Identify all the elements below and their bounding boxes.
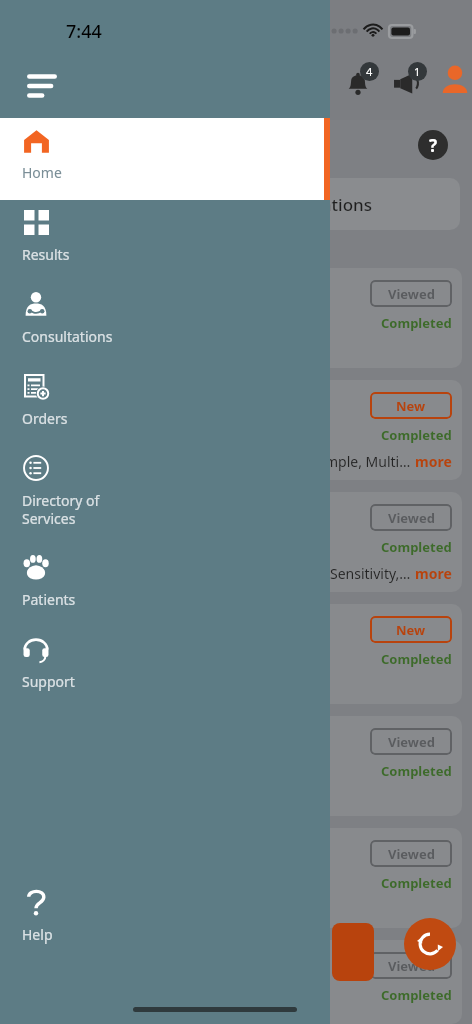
staticText: Orders [22,409,68,428]
staticText: ? [429,134,438,157]
staticText: Consultations [22,327,113,346]
button[interactable]: Viewed [250,828,462,928]
staticText: Viewed [388,285,435,303]
button[interactable]: New [250,380,462,480]
staticText: Home [22,163,62,182]
staticText: Sensitivity,… [330,564,411,583]
staticText: Viewed [388,733,435,751]
button[interactable]: Support [0,627,330,709]
staticText: Support [22,672,75,691]
staticText: more [415,564,452,583]
button[interactable]: Viewed [250,940,462,1024]
button[interactable]: Help [0,880,330,962]
button[interactable]: Refresh [404,918,456,970]
button[interactable]: Help [418,130,448,160]
button[interactable]: Viewed [250,268,462,368]
staticText: Completed [381,538,452,556]
staticText: Patients [22,590,76,609]
staticText: Completed [381,426,452,444]
staticText: Completed [381,986,452,1004]
staticText: Results [22,245,70,264]
staticText: 4 [366,64,373,79]
staticText: Consultations [260,193,372,216]
staticText: mple, Multi… [325,452,411,471]
button[interactable]: Home [0,118,330,200]
button[interactable]: Patients [0,545,330,627]
staticText: New [396,621,426,639]
button[interactable]: Open navigation menu [14,62,70,110]
staticText: more [415,452,452,471]
staticText: Completed [381,650,452,668]
staticText: Completed [381,762,452,780]
button[interactable]: New [250,604,462,704]
staticText: Completed [381,314,452,332]
staticText: 7:44 [66,19,102,44]
button[interactable]: Viewed [250,716,462,816]
button[interactable]: Orders [0,364,330,446]
staticText: New [396,397,426,415]
staticText: Viewed [388,845,435,863]
staticText: Directory of Services [22,491,100,528]
button[interactable]: Directory of Services [0,446,330,545]
staticText: Viewed [388,957,435,975]
button[interactable]: Viewed [250,492,462,592]
button[interactable]: Results [0,200,330,282]
staticText: Help [22,925,53,944]
staticText: Viewed [388,509,435,527]
button[interactable]: Consultations [0,282,330,364]
staticText: 1 [414,64,421,79]
staticText: Completed [381,874,452,892]
